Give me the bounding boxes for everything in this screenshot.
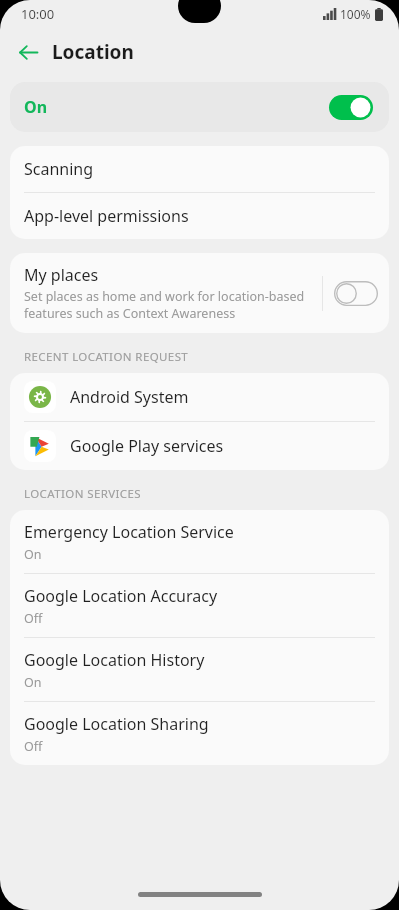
staticText: Off [24, 738, 43, 755]
staticText: My places [24, 264, 99, 286]
staticText: Emergency Location Service [24, 521, 234, 543]
staticText: On [24, 96, 48, 118]
button[interactable]: Back [8, 32, 48, 72]
button[interactable]: Emergency Location Service [10, 510, 389, 573]
staticText: On [24, 674, 42, 691]
button[interactable]: Google Location History [10, 638, 389, 701]
staticText: Google Location Sharing [24, 713, 209, 735]
staticText: Android System [70, 386, 189, 408]
button[interactable]: Scanning [10, 146, 389, 192]
staticText: RECENT LOCATION REQUEST [24, 349, 189, 365]
staticText: 10:00 [21, 5, 55, 23]
staticText: Location [52, 39, 134, 65]
staticText: Scanning [24, 158, 94, 180]
staticText: App-level permissions [24, 205, 189, 227]
staticText: Google Location Accuracy [24, 585, 218, 607]
button[interactable]: Android System [10, 373, 389, 421]
staticText: LOCATION SERVICES [24, 486, 142, 502]
staticText: Set places as home and work for location… [24, 288, 316, 321]
staticText: Google Location History [24, 649, 205, 671]
button[interactable]: App-level permissions [10, 193, 389, 239]
staticText: On [24, 546, 42, 563]
staticText: Off [24, 610, 43, 627]
button[interactable]: Google Play services [10, 422, 389, 470]
button[interactable]: My places [10, 253, 389, 333]
staticText: Google Play services [70, 435, 224, 457]
staticText: 100% [340, 6, 371, 22]
button[interactable]: Google Location Accuracy [10, 574, 389, 637]
button[interactable]: Google Location Sharing [10, 702, 389, 765]
button[interactable]: On [10, 82, 389, 132]
button[interactable]: My places switch [334, 281, 378, 306]
